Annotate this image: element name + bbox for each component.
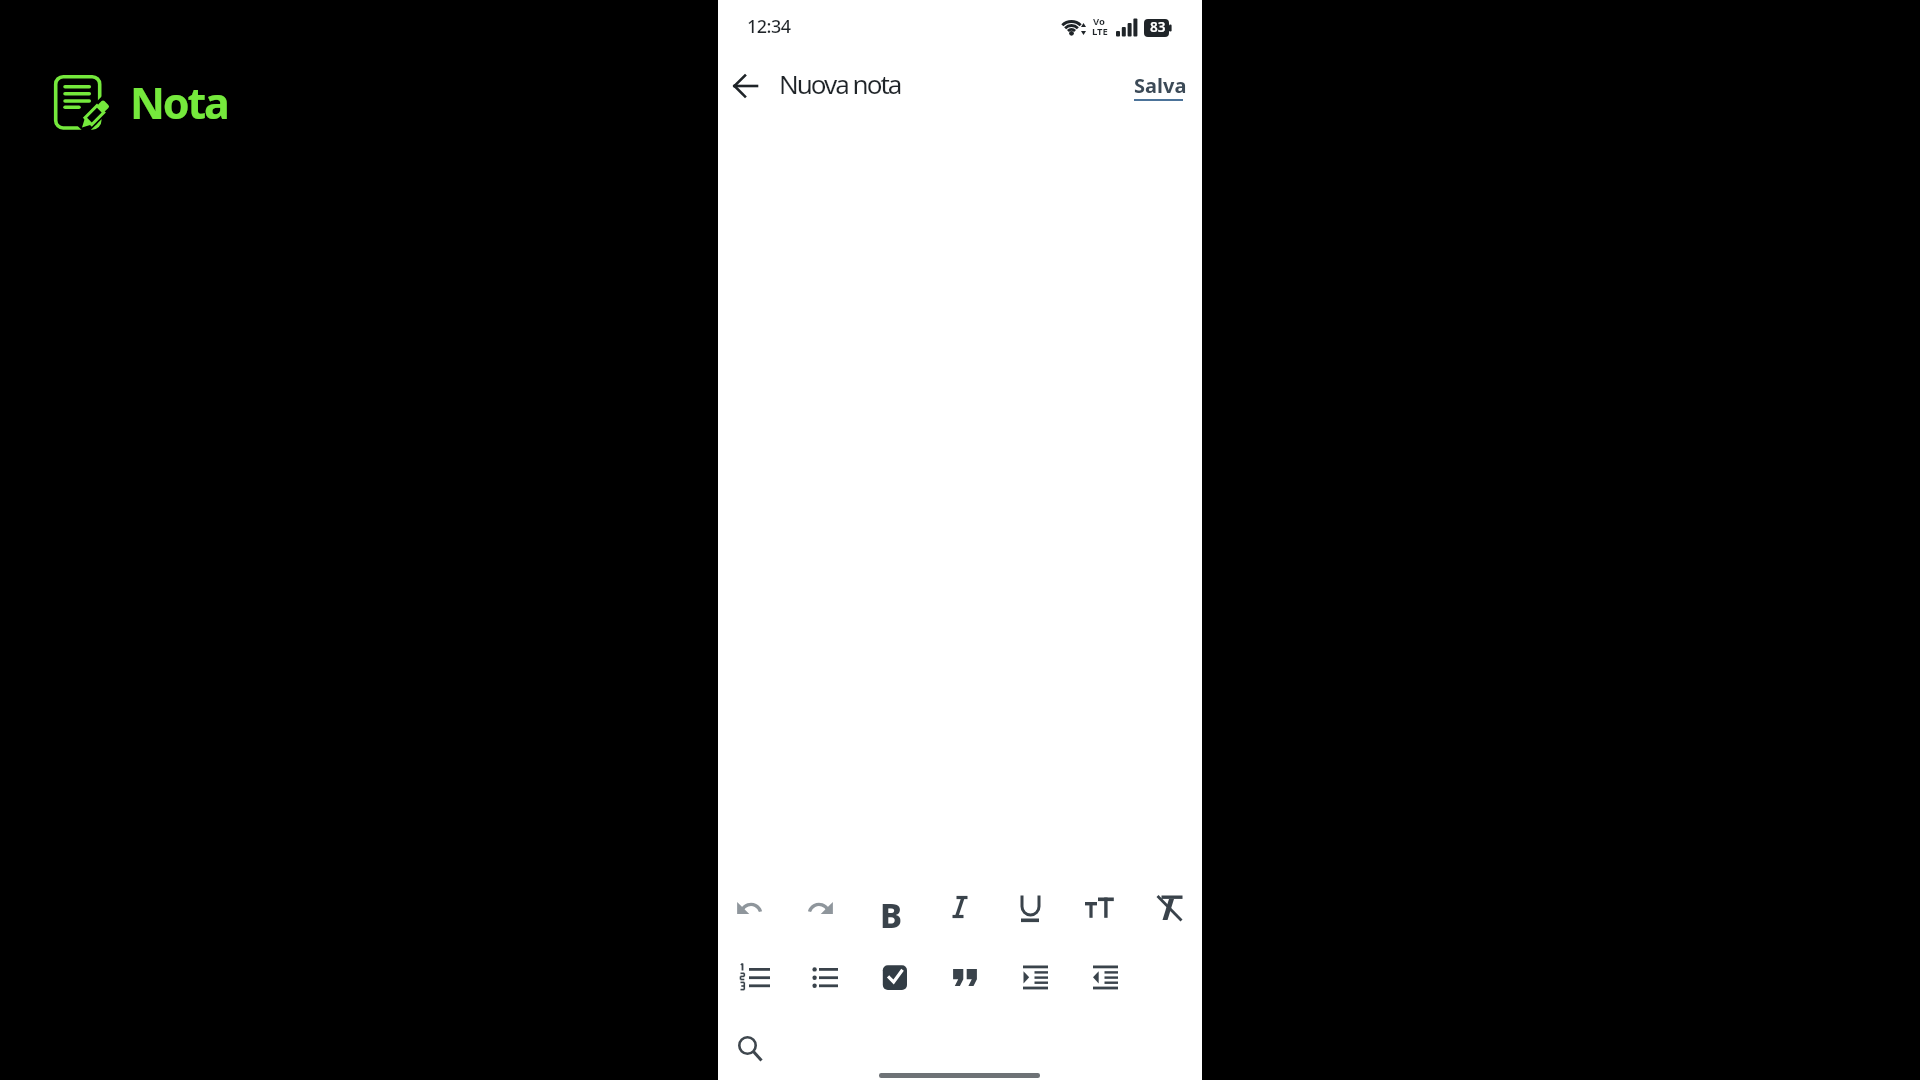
button[interactable] (1006, 884, 1054, 931)
button[interactable] (866, 884, 914, 931)
button[interactable] (1011, 954, 1059, 1001)
button[interactable] (1146, 884, 1194, 931)
button[interactable] (722, 62, 770, 110)
button[interactable] (941, 954, 989, 1001)
button[interactable] (731, 954, 779, 1001)
button[interactable] (879, 1073, 1040, 1078)
staticText: Vo (1093, 15, 1105, 28)
staticText: Salva (1134, 72, 1187, 99)
staticText: Nota (130, 73, 228, 132)
staticText: 12:34 (747, 14, 791, 39)
button[interactable] (871, 954, 919, 1001)
button[interactable]: Salva (1122, 60, 1194, 106)
button[interactable] (726, 884, 774, 931)
button[interactable] (1081, 954, 1129, 1001)
button[interactable] (801, 954, 849, 1001)
staticText: B (880, 893, 903, 938)
button[interactable] (796, 884, 844, 931)
button[interactable] (936, 884, 984, 931)
staticText: 83 (1150, 18, 1166, 36)
staticText: Nuova nota (779, 66, 901, 101)
button[interactable] (1076, 884, 1124, 931)
button[interactable] (724, 1024, 772, 1072)
staticText: LTE (1092, 25, 1108, 38)
